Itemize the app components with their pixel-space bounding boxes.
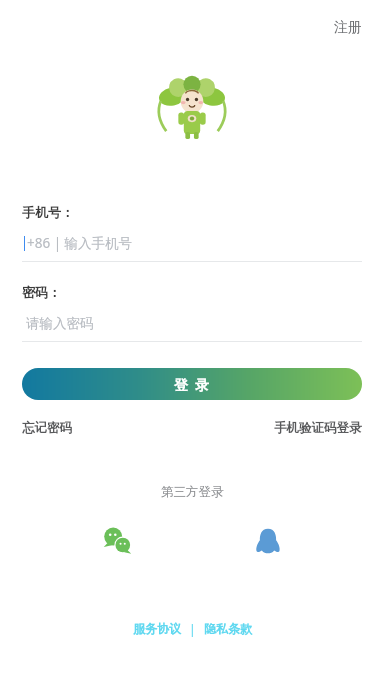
staticText: 请输入密码	[26, 315, 94, 332]
staticText: 密码：	[22, 284, 61, 300]
staticText: 登 录	[174, 375, 210, 394]
button[interactable]: QQ登录	[248, 522, 288, 562]
staticText: |	[189, 621, 196, 637]
button[interactable]: 服务协议	[129, 617, 185, 640]
staticText: 注册	[334, 19, 362, 37]
button[interactable]: 隐私条款	[200, 617, 256, 640]
staticText: +86 | 输入手机号	[27, 234, 133, 252]
button[interactable]: +86 | 输入手机号	[22, 230, 362, 256]
staticText: 手机验证码登录	[274, 420, 362, 436]
button[interactable]: 请输入密码	[22, 310, 362, 336]
button[interactable]: 登 录	[22, 368, 362, 400]
staticText: 手机号：	[22, 204, 74, 220]
staticText: 隐私条款	[204, 621, 252, 636]
staticText: 服务协议	[133, 621, 181, 636]
staticText: 忘记密码	[22, 420, 72, 436]
button[interactable]: 忘记密码	[22, 416, 72, 440]
staticText: 第三方登录	[161, 484, 224, 500]
button[interactable]: 手机验证码登录	[274, 416, 362, 440]
button[interactable]: 注册	[324, 13, 372, 43]
button[interactable]: 微信登录	[98, 522, 138, 562]
